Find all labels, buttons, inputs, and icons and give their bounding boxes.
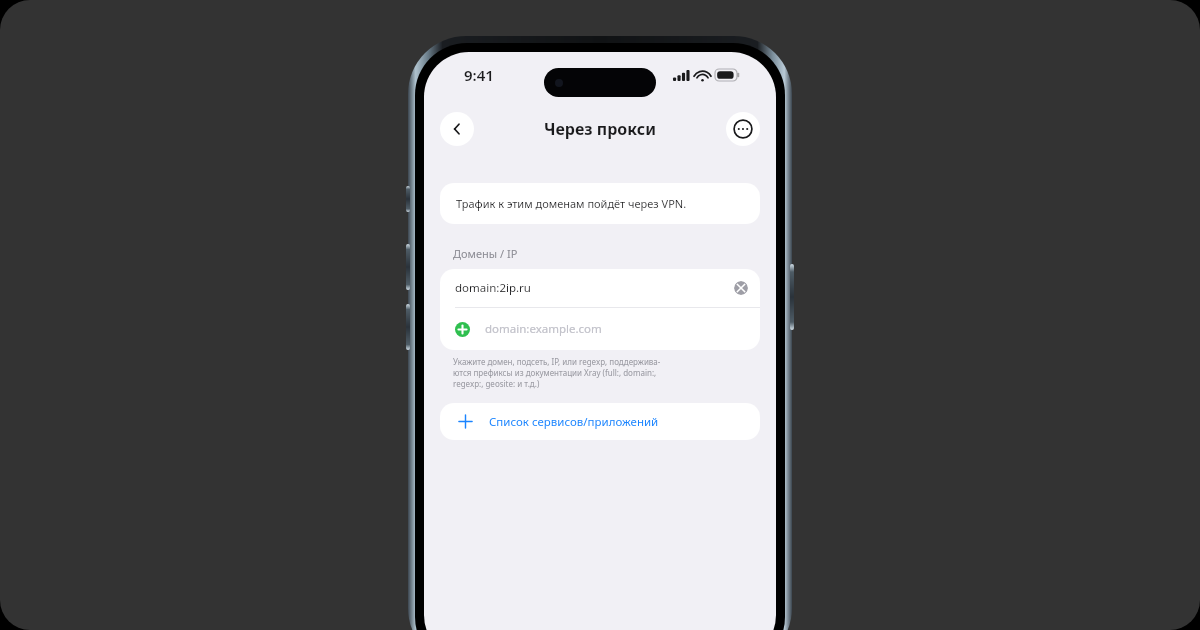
button[interactable]: More options (726, 112, 760, 146)
other: Add domain (455, 322, 470, 337)
button[interactable]: Add domain (440, 308, 760, 350)
button[interactable]: Clear (734, 281, 748, 295)
button[interactable]: Back (440, 112, 474, 146)
staticText: domain:example.com (485, 321, 602, 337)
button[interactable]: domain:2ip.ru (440, 269, 760, 307)
staticText: Через прокси (544, 118, 656, 140)
staticText: Домены / IP (453, 246, 518, 261)
button[interactable]: Трафик к этим доменам пойдёт через VPN. (440, 183, 760, 224)
staticText: Трафик к этим доменам пойдёт через VPN. (456, 196, 687, 211)
staticText: 9:41 (464, 65, 494, 85)
staticText: domain:2ip.ru (455, 280, 531, 296)
staticText: Список сервисов/приложений (489, 414, 659, 430)
staticText: Укажите домен, подсеть, IP, или regexp, … (453, 356, 661, 389)
button[interactable]: Список сервисов/приложений (440, 403, 760, 440)
